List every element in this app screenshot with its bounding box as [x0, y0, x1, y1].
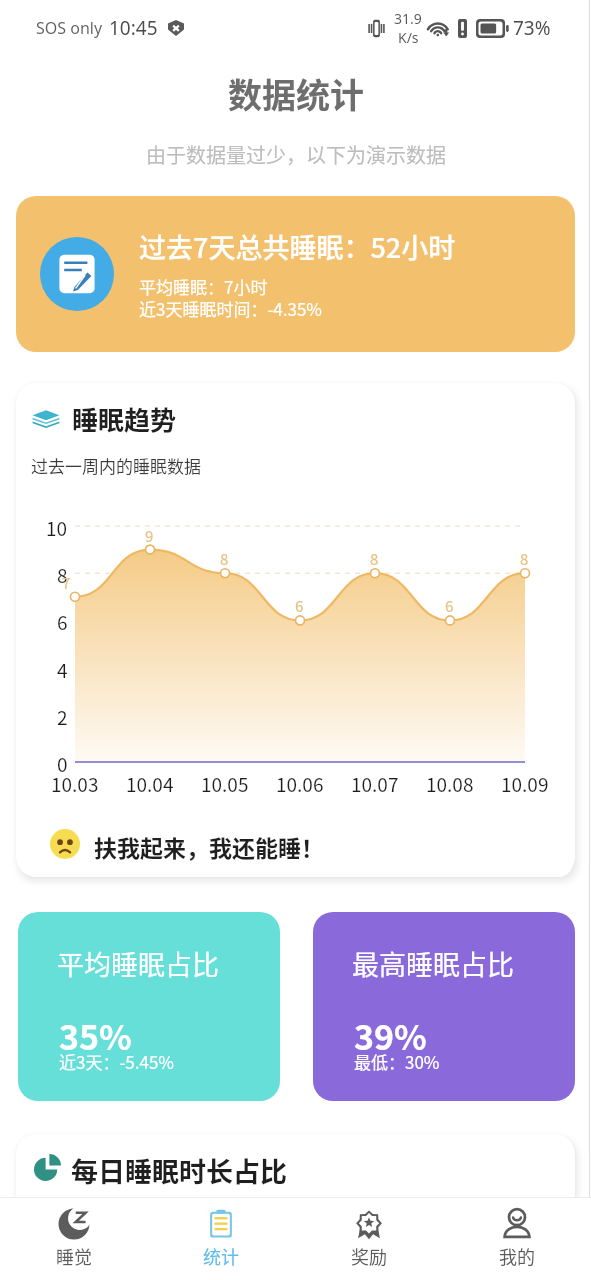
staticText: 4 [57, 656, 68, 684]
staticText: 最高睡眠占比 [352, 944, 514, 983]
staticText: 8 [520, 548, 529, 570]
staticText: K/s [398, 28, 419, 47]
staticText: 睡眠趋势 [72, 400, 177, 438]
staticText: 6 [57, 608, 68, 636]
button[interactable]: Sleep [0, 1198, 147, 1280]
staticText: 平均睡眠：7小时 [139, 274, 268, 299]
staticText: 10.07 [351, 770, 399, 798]
staticText: 10.06 [276, 770, 324, 798]
staticText: 6 [295, 595, 304, 617]
staticText: 10.08 [426, 770, 474, 798]
staticText: 近3天：-5.45% [59, 1049, 175, 1074]
staticText: 10.09 [501, 770, 549, 798]
staticText: 睡觉 [56, 1243, 92, 1269]
staticText: 39% [354, 1011, 427, 1060]
button[interactable]: Rewards [295, 1198, 443, 1280]
button[interactable]: Statistics [147, 1198, 295, 1280]
staticText: 过去一周内的睡眠数据 [31, 453, 201, 478]
staticText: 10 [46, 514, 68, 542]
staticText: 6 [445, 595, 454, 617]
staticText: 10:45 [109, 15, 158, 41]
staticText: 0 [57, 750, 68, 778]
staticText: 10.05 [201, 770, 249, 798]
staticText: 我的 [499, 1243, 535, 1269]
button[interactable]: 平均睡眠占比 [18, 912, 280, 1101]
staticText: 扶我起来，我还能睡！ [94, 830, 324, 863]
staticText: 平均睡眠占比 [57, 944, 219, 983]
staticText: 7 [62, 572, 71, 594]
staticText: 10.04 [126, 770, 174, 798]
button[interactable]: Profile [443, 1198, 591, 1280]
staticText: 由于数据量过少，以下为演示数据 [146, 140, 446, 169]
staticText: 数据统计 [228, 69, 364, 118]
staticText: 73% [513, 15, 551, 41]
staticText: 8 [370, 548, 379, 570]
staticText: 35% [59, 1011, 132, 1060]
button[interactable]: 最高睡眠占比 [313, 912, 575, 1101]
staticText: 31.9 [394, 9, 422, 28]
staticText: 2 [57, 703, 68, 731]
button[interactable]: 过去7天总共睡眠：52小时 [16, 196, 575, 352]
staticText: 近3天睡眠时间：-4.35% [139, 296, 323, 321]
staticText: 9 [145, 525, 154, 547]
staticText: 8 [57, 561, 68, 589]
staticText: SOS only [36, 17, 103, 39]
staticText: 统计 [203, 1243, 239, 1269]
staticText: 奖励 [351, 1243, 387, 1269]
staticText: 8 [220, 548, 229, 570]
staticText: 10.03 [51, 770, 99, 798]
staticText: 过去7天总共睡眠：52小时 [139, 227, 456, 266]
staticText: 每日睡眠时长占比 [71, 1151, 287, 1190]
staticText: 最低：30% [354, 1049, 440, 1074]
